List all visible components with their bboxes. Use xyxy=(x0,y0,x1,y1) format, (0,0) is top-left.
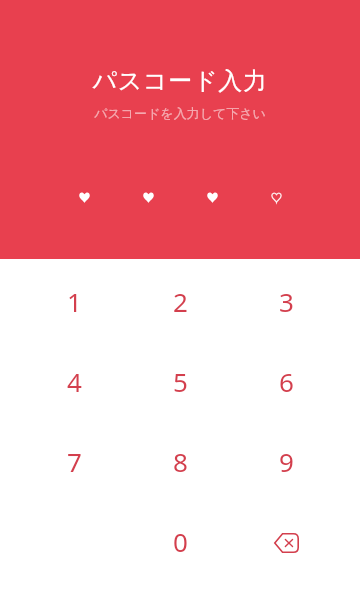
button[interactable]: 3 xyxy=(233,261,339,341)
other: Delete xyxy=(268,523,304,559)
staticText: パスコードを入力して下さい xyxy=(94,105,266,121)
button[interactable]: 8 xyxy=(127,421,233,501)
button[interactable]: 9 xyxy=(233,421,339,501)
staticText: 6 xyxy=(279,364,294,399)
button[interactable]: 6 xyxy=(233,341,339,421)
staticText: 0 xyxy=(173,524,188,559)
staticText: 8 xyxy=(173,444,188,479)
button[interactable]: Delete xyxy=(233,501,339,581)
staticText: 9 xyxy=(279,444,294,479)
button[interactable]: 4 xyxy=(21,341,127,421)
staticText: パスコード入力 xyxy=(92,66,268,96)
button[interactable]: 5 xyxy=(127,341,233,421)
staticText: 5 xyxy=(173,364,188,399)
staticText: 1 xyxy=(67,284,82,319)
button[interactable]: 0 xyxy=(127,501,233,581)
staticText: 3 xyxy=(279,284,294,319)
button[interactable]: 7 xyxy=(21,421,127,501)
button[interactable]: 1 xyxy=(21,261,127,341)
staticText: 7 xyxy=(67,444,82,479)
staticText: 2 xyxy=(173,284,188,319)
button[interactable]: 2 xyxy=(127,261,233,341)
staticText: 4 xyxy=(67,364,82,399)
